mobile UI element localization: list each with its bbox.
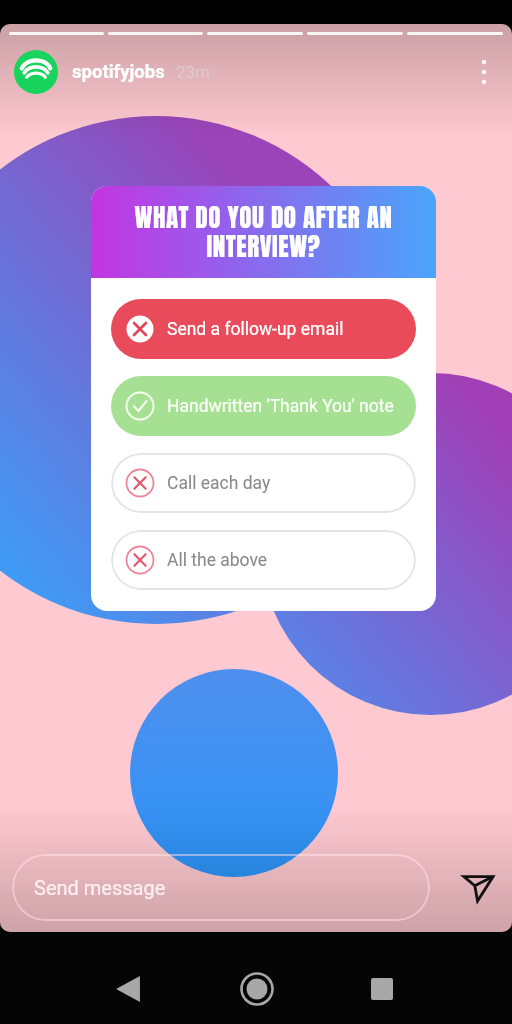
- staticText: WHAT DO YOU DO AFTER AN INTERVIEW?: [109, 199, 418, 265]
- button[interactable]: Send: [448, 858, 508, 918]
- button[interactable]: spotifyjobs profile: [14, 50, 58, 94]
- staticText: Send a follow-up email: [167, 319, 344, 340]
- button[interactable]: All the above: [111, 530, 416, 590]
- button[interactable]: Send a follow-up email: [111, 299, 416, 359]
- button[interactable]: Call each day: [111, 453, 416, 513]
- staticText: Send message: [34, 876, 166, 899]
- staticText: spotifyjobs: [72, 61, 165, 83]
- staticText: All the above: [167, 550, 268, 571]
- button[interactable]: Send message: [12, 854, 430, 921]
- button[interactable]: More options: [466, 54, 502, 90]
- button[interactable]: Back: [100, 961, 156, 1017]
- button[interactable]: Recent apps: [354, 961, 410, 1017]
- button[interactable]: Home: [229, 961, 285, 1017]
- button[interactable]: Handwritten 'Thank You' note: [111, 376, 416, 436]
- staticText: Call each day: [167, 473, 271, 494]
- staticText: 23m: [176, 62, 211, 82]
- staticText: Handwritten 'Thank You' note: [167, 396, 394, 417]
